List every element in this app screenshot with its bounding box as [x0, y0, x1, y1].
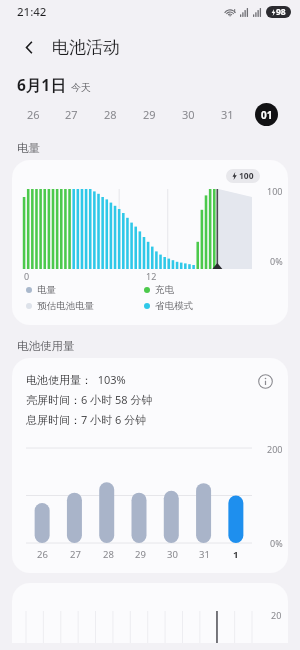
staticText: 21:42 — [17, 4, 47, 20]
staticText: 28 — [103, 548, 114, 561]
button[interactable]: 31 — [208, 95, 247, 133]
staticText: 12 — [146, 270, 157, 282]
staticText: 1 — [233, 548, 239, 561]
staticText: 省电模式 — [155, 300, 193, 312]
staticText: 30 — [167, 548, 178, 561]
staticText: 27 — [70, 548, 81, 561]
staticText: 亮屏时间：6 小时 58 分钟 — [26, 392, 153, 407]
staticText: 电量 — [17, 141, 40, 155]
button[interactable]: 28 — [91, 95, 130, 133]
button[interactable]: 26 — [14, 95, 52, 133]
staticText: 26 — [27, 107, 40, 122]
staticText: 30 — [182, 107, 195, 122]
staticText: 29 — [143, 107, 156, 122]
staticText: 今天 — [71, 81, 91, 94]
staticText: 0 — [24, 270, 30, 282]
staticText: 预估电池电量 — [37, 300, 94, 312]
staticText: 200 — [267, 443, 283, 455]
button[interactable]: 27 — [52, 95, 91, 133]
staticText: 电池活动 — [52, 37, 120, 58]
staticText: 电池使用量 — [17, 339, 75, 353]
staticText: 01 — [261, 108, 273, 122]
button[interactable]: Info — [252, 368, 278, 394]
staticText: 息屏时间：7 小时 6 分钟 — [26, 412, 147, 427]
staticText: 100 — [267, 185, 283, 197]
button[interactable]: Back — [14, 32, 44, 62]
staticText: 31 — [199, 548, 210, 561]
staticText: 20 — [271, 609, 282, 621]
staticText: 电量 — [37, 284, 56, 296]
staticText: 0% — [270, 537, 283, 549]
staticText: 0% — [270, 255, 283, 267]
button[interactable]: 电池使用量： 103% — [12, 358, 288, 573]
staticText: 28 — [104, 107, 117, 122]
button[interactable]: 100 — [12, 160, 288, 325]
button[interactable]: 01 — [247, 95, 286, 133]
button[interactable]: 29 — [130, 95, 169, 133]
staticText: 98 — [276, 6, 286, 18]
staticText: 26 — [37, 548, 48, 561]
staticText: 6月1日 — [17, 74, 66, 95]
staticText: 充电 — [155, 284, 174, 296]
button[interactable]: 30 — [169, 95, 208, 133]
button[interactable]: 20 — [12, 583, 288, 643]
staticText: 电池使用量： 103% — [26, 372, 126, 387]
staticText: 29 — [135, 548, 146, 561]
staticText: 100 — [239, 170, 254, 182]
staticText: 27 — [65, 107, 78, 122]
staticText: 31 — [221, 107, 234, 122]
